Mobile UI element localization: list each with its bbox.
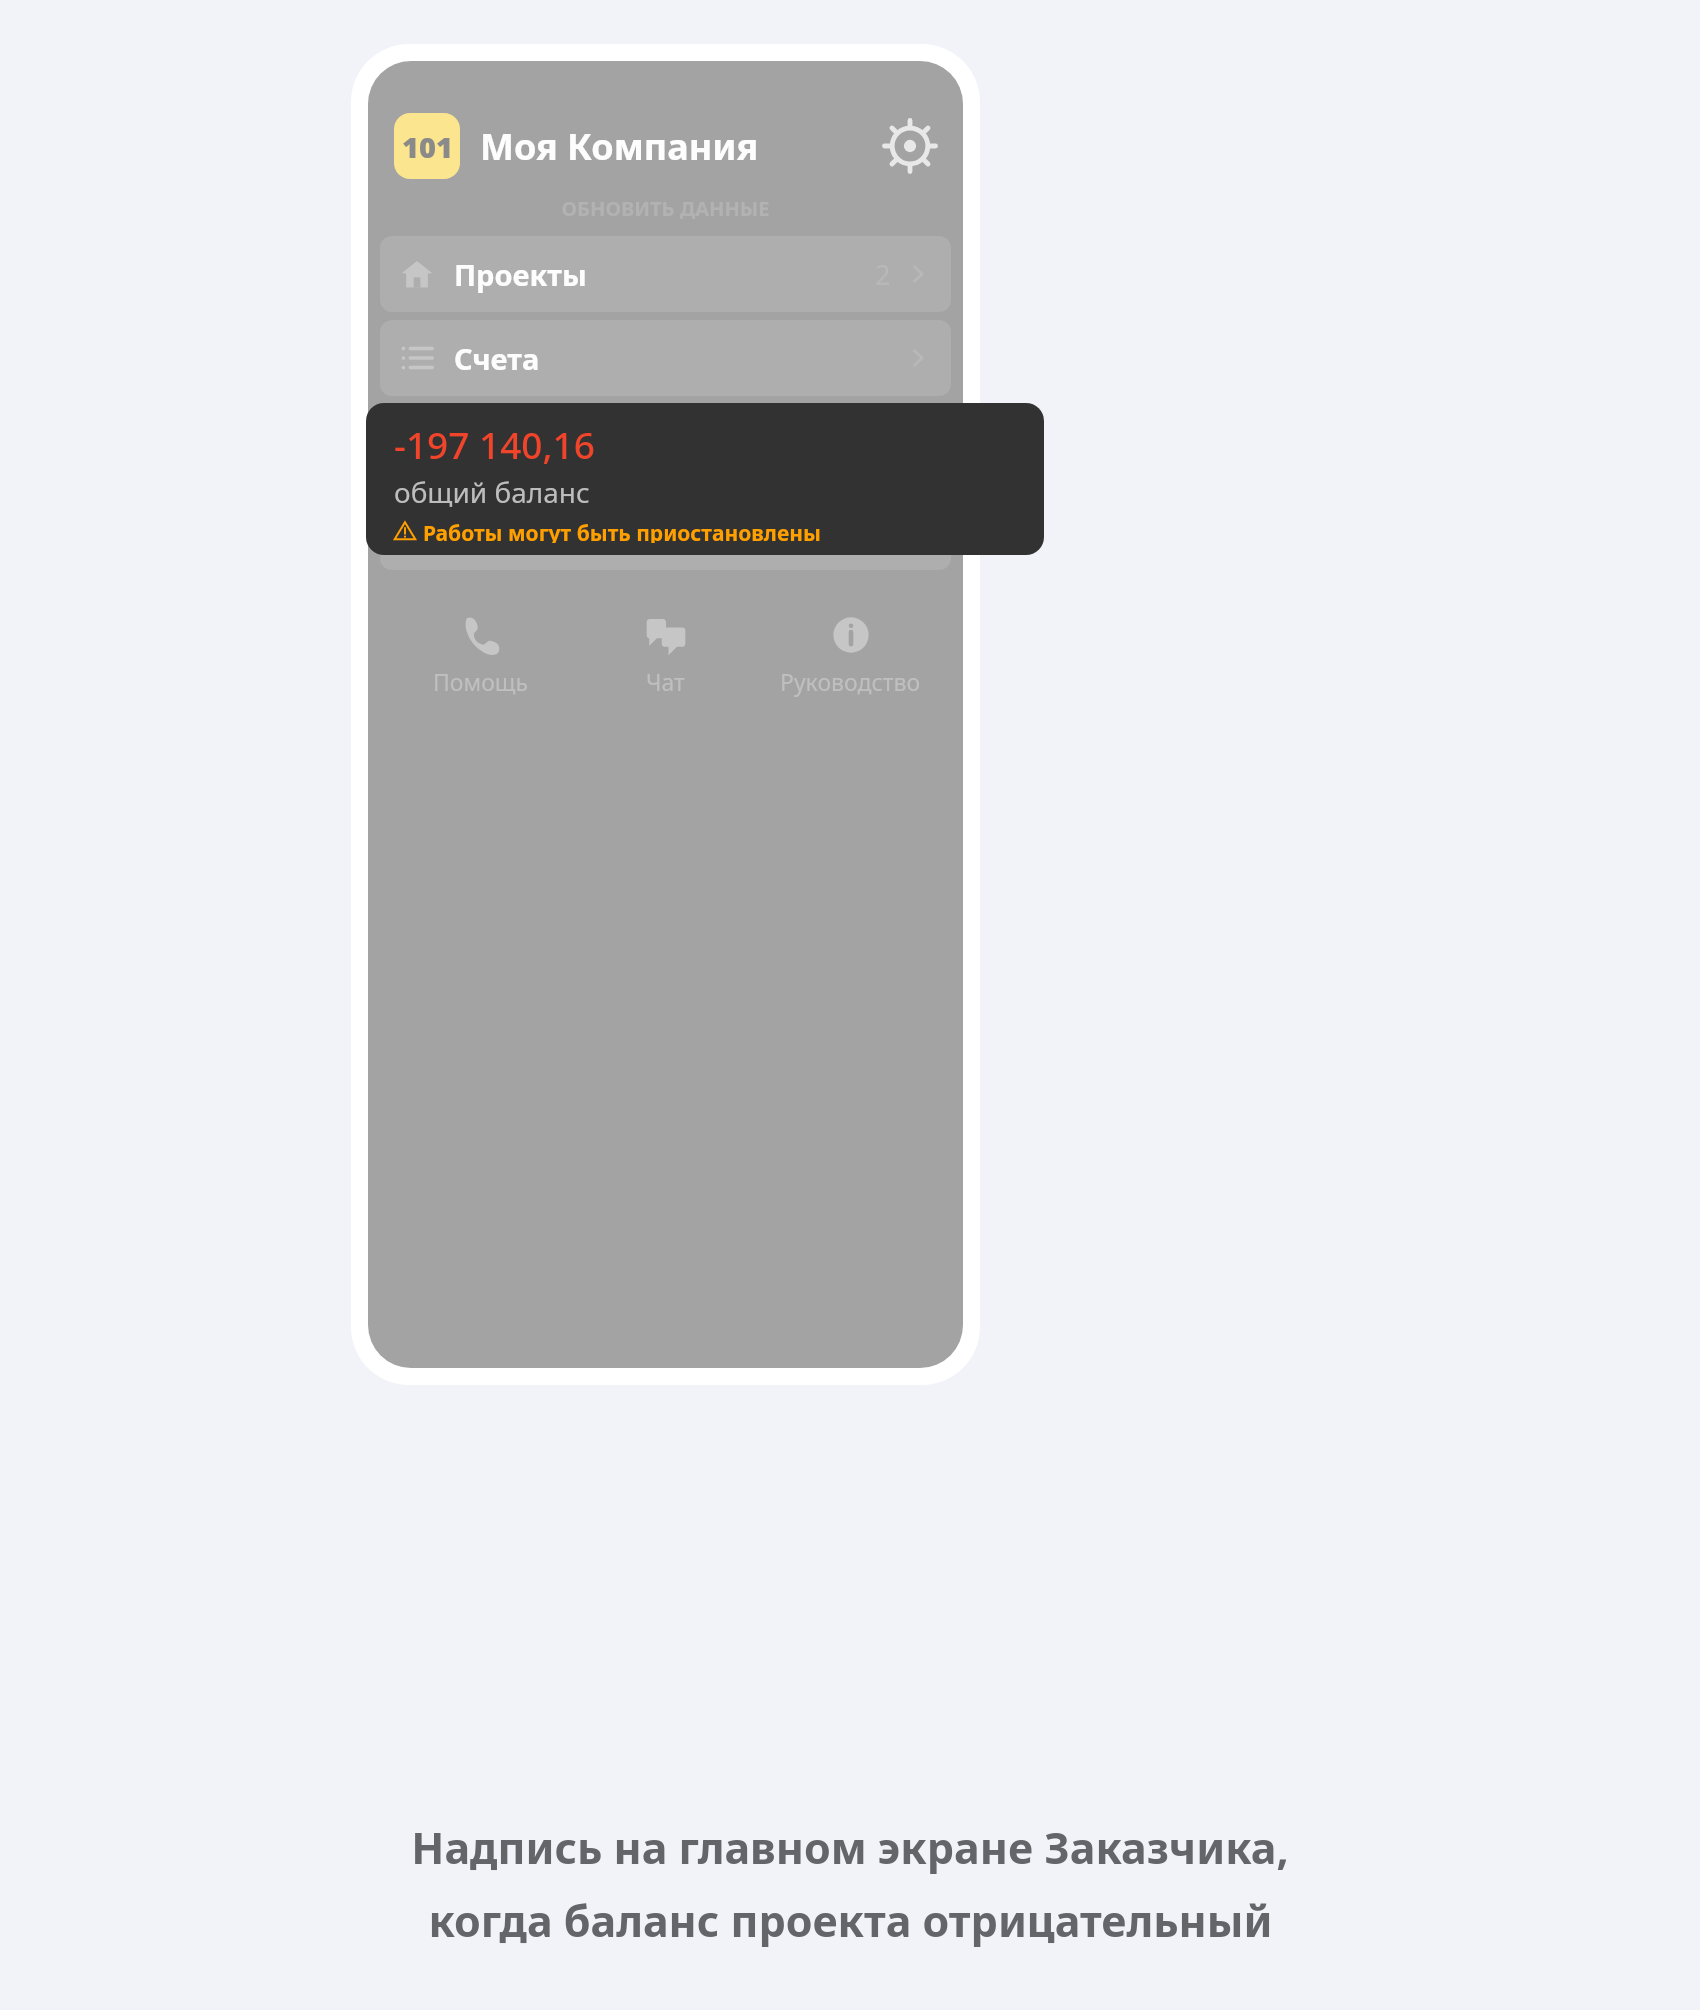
staticText: Помощь bbox=[433, 666, 529, 697]
staticText: Чат bbox=[646, 666, 685, 697]
button[interactable]: Помощь bbox=[388, 606, 573, 705]
button[interactable]: Счета bbox=[380, 320, 951, 396]
button[interactable]: -197 140,16 bbox=[366, 403, 1044, 555]
staticText: История событий bbox=[454, 423, 718, 462]
staticText: Моя Компания bbox=[480, 122, 759, 171]
staticText: 101 bbox=[402, 127, 453, 166]
button[interactable]: Logo 101 bbox=[394, 113, 460, 179]
button[interactable]: Прайс-лист bbox=[380, 494, 951, 570]
button[interactable]: Settings bbox=[883, 119, 937, 173]
staticText: Надпись на главном экране Заказчика, bbox=[411, 1818, 1289, 1877]
staticText: ОБНОВИТЬ ДАННЫЕ bbox=[368, 195, 963, 222]
staticText: общий баланс bbox=[394, 473, 590, 511]
button[interactable]: История событий bbox=[380, 404, 951, 480]
staticText: -197 140,16 bbox=[394, 419, 595, 469]
staticText: Работы могут быть приостановлены bbox=[423, 519, 821, 543]
button[interactable]: Чат bbox=[573, 606, 758, 705]
staticText: Счета bbox=[454, 339, 540, 378]
staticText: Прайс-лист bbox=[454, 513, 624, 552]
button[interactable]: Проекты bbox=[380, 236, 951, 312]
staticText: Проекты bbox=[454, 255, 587, 294]
staticText: когда баланс проекта отрицательный bbox=[428, 1891, 1273, 1950]
staticText: 2 bbox=[875, 256, 891, 293]
staticText: Руководство bbox=[780, 666, 921, 697]
button[interactable]: Руководство bbox=[758, 606, 943, 705]
